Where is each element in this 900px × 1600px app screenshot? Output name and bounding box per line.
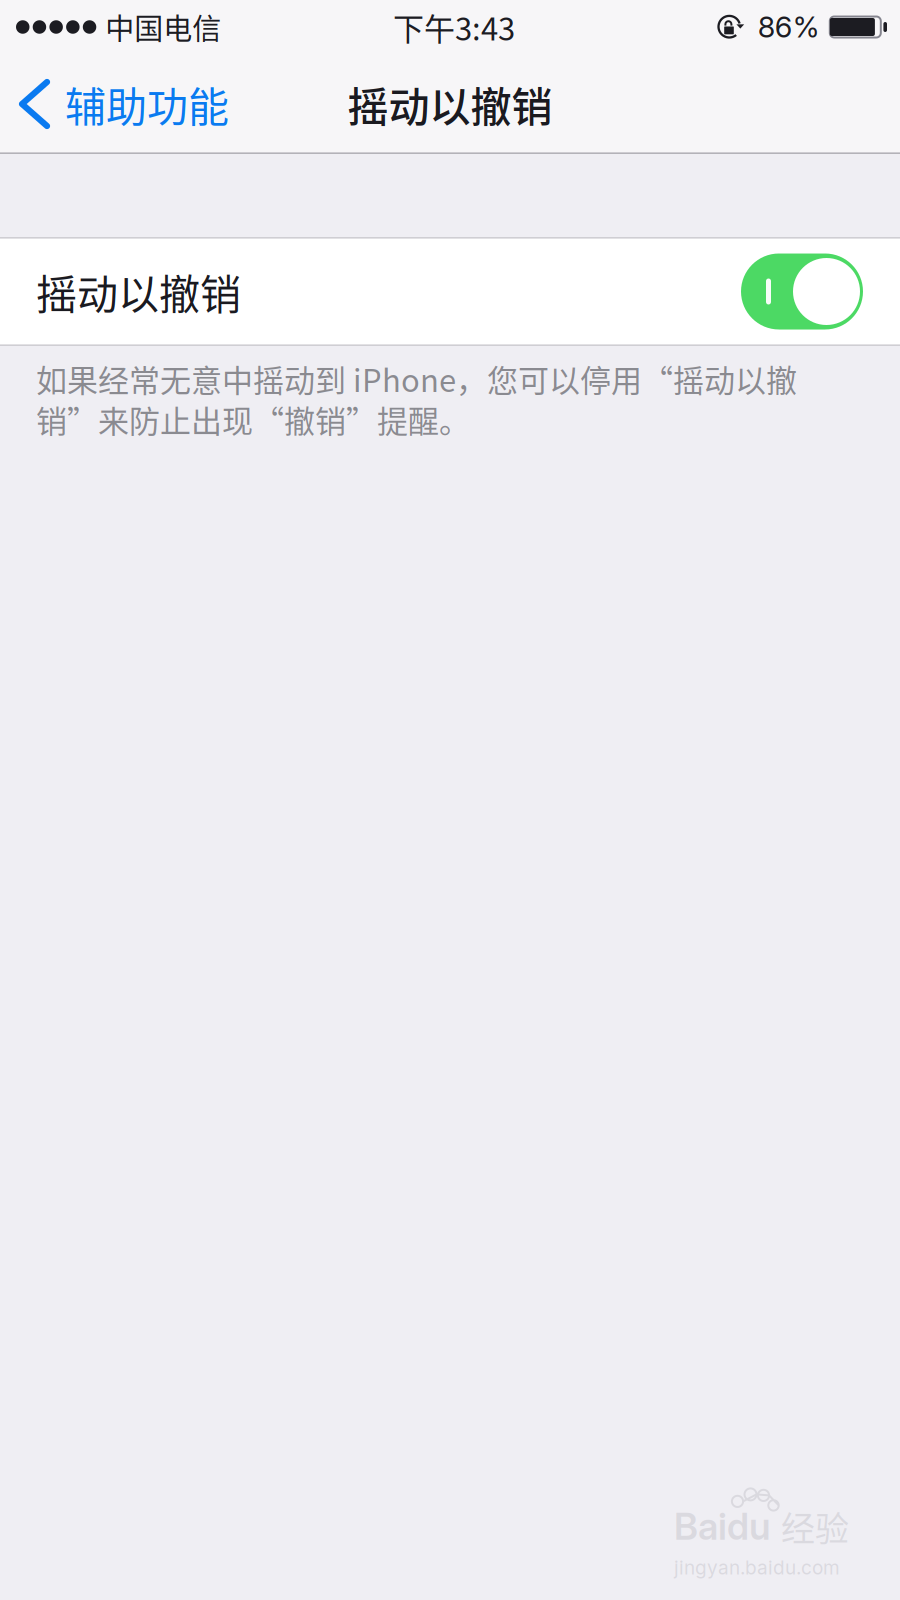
staticText: Baidu bbox=[674, 1504, 771, 1549]
staticText: 摇动以撤销 bbox=[347, 74, 552, 134]
staticText: 经验 bbox=[781, 1502, 849, 1551]
staticText: 摇动以撤销 bbox=[36, 262, 241, 321]
button[interactable]: 辅助功能 bbox=[0, 54, 241, 154]
staticText: 下午3:43 bbox=[393, 5, 515, 49]
staticText: 86% bbox=[758, 9, 820, 45]
staticText: 中国电信 bbox=[105, 6, 221, 48]
staticText: 如果经常无意中摇动到 iPhone，您可以停用“摇动以撤销”来防止出现“撤销”提… bbox=[36, 356, 797, 442]
staticText: jingyan.baidu.com bbox=[674, 1556, 840, 1579]
staticText: 辅助功能 bbox=[65, 74, 229, 134]
button[interactable]: 摇动以撤销 bbox=[0, 237, 900, 346]
